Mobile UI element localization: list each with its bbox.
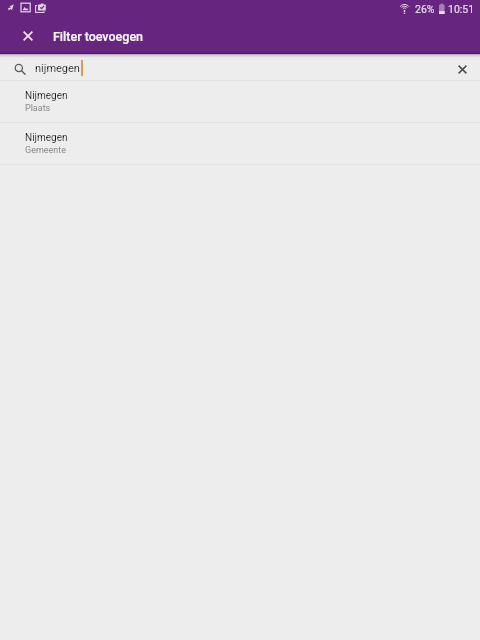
staticText: Nijmegen: [25, 90, 68, 102]
button[interactable]: Zoekopdracht wissen: [449, 56, 475, 82]
staticText: 26%: [415, 3, 435, 15]
staticText: 10:51: [448, 3, 475, 15]
button[interactable]: Sluiten: [11, 19, 44, 52]
button[interactable]: Zoekveld: nijmegen: [0, 54, 480, 81]
staticText: Nijmegen: [25, 132, 68, 144]
button[interactable]: Nijmegen: [0, 81, 480, 123]
staticText: nijmegen: [35, 62, 80, 75]
staticText: Filter toevoegen: [53, 29, 144, 44]
button[interactable]: Nijmegen: [0, 123, 480, 165]
staticText: Plaats: [25, 103, 51, 114]
staticText: Gemeente: [25, 145, 67, 156]
